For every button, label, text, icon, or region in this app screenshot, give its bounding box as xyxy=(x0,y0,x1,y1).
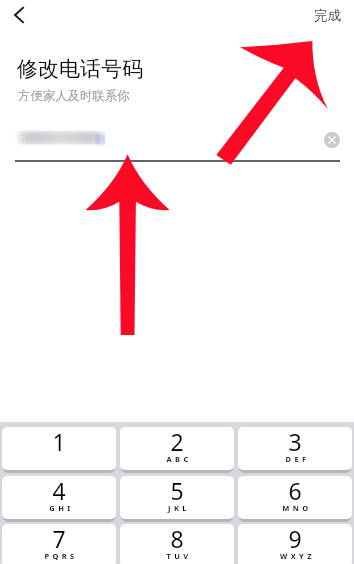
staticText: WXYZ xyxy=(280,551,315,561)
button[interactable]: 7 xyxy=(2,524,116,564)
staticText: 6 xyxy=(288,475,302,506)
button[interactable]: 5 xyxy=(120,476,234,522)
staticText: 7 xyxy=(52,523,66,554)
staticText: 方便家人及时联系你 xyxy=(18,88,130,104)
button[interactable]: 6 xyxy=(238,476,352,522)
staticText: 3 xyxy=(288,426,302,457)
button[interactable]: 4 xyxy=(2,476,116,522)
button[interactable]: 8 xyxy=(120,524,234,564)
staticText: 9 xyxy=(288,523,302,554)
staticText: 4 xyxy=(52,475,66,506)
staticText: 修改电话号码 xyxy=(17,56,143,82)
staticText: DEF xyxy=(285,454,310,464)
staticText: 8 xyxy=(170,523,184,554)
button[interactable]: Back xyxy=(2,0,36,32)
button[interactable]: Clear xyxy=(324,132,340,148)
staticText: PQRS xyxy=(44,551,78,561)
staticText: 5 xyxy=(170,475,184,506)
staticText: GHI xyxy=(49,503,74,513)
staticText: MNO xyxy=(282,503,312,513)
button[interactable]: 完成 xyxy=(303,0,351,30)
staticText: 完成 xyxy=(314,7,341,24)
button[interactable]: 9 xyxy=(238,524,352,564)
button[interactable]: 3 xyxy=(238,427,352,473)
staticText: ABC xyxy=(166,454,192,464)
staticText: JKL xyxy=(168,503,190,513)
staticText: 1 xyxy=(52,426,66,457)
staticText: 2 xyxy=(170,426,184,457)
button[interactable]: 2 xyxy=(120,427,234,473)
staticText: TUV xyxy=(166,551,192,561)
button[interactable]: 1 xyxy=(2,427,116,473)
